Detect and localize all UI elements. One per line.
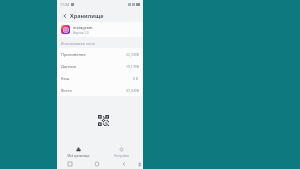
staticText: Настройки [114, 154, 129, 158]
staticText: Всего [61, 88, 72, 93]
button[interactable]: Recents [57, 159, 83, 169]
staticText: Использование места [61, 42, 95, 46]
button[interactable]: Кеш [57, 72, 143, 84]
button[interactable]: Данные [57, 60, 143, 72]
button[interactable]: Моё хранилище [57, 146, 100, 159]
staticText: 0 B [133, 76, 139, 81]
staticText: 37,4 MB [126, 88, 139, 93]
staticText: instagram [73, 25, 93, 30]
button[interactable]: Back [61, 12, 68, 19]
staticText: 22,3 MB [126, 52, 139, 57]
staticText: Приложение [61, 52, 86, 57]
button[interactable]: Home [83, 159, 110, 169]
staticText: 15,1 MB [126, 64, 139, 69]
button[interactable]: Всего [57, 84, 143, 96]
staticText: Кеш [61, 76, 70, 81]
staticText: Данные [61, 64, 77, 69]
staticText: Версия 1.0 [73, 31, 89, 35]
staticText: 11:34 [60, 2, 69, 7]
button[interactable]: Настройки [100, 146, 143, 159]
button[interactable]: Keyboard [137, 159, 143, 169]
staticText: Моё хранилище [67, 154, 90, 158]
button[interactable]: instagram [57, 22, 143, 37]
button[interactable]: Приложение [57, 48, 143, 60]
button[interactable]: Back [110, 159, 137, 169]
staticText: Хранилище [70, 12, 104, 19]
